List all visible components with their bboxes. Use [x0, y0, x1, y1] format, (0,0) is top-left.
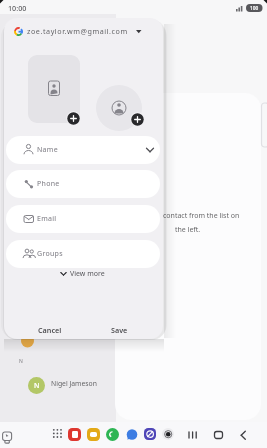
button[interactable]: [162, 428, 174, 440]
button[interactable]: [144, 428, 156, 440]
staticText: 10:00: [8, 3, 27, 13]
staticText: the left.: [175, 225, 201, 235]
staticText: N: [19, 358, 23, 365]
button[interactable]: View more: [60, 268, 105, 280]
staticText: Phone: [37, 179, 60, 189]
button[interactable]: [28, 55, 80, 123]
button[interactable]: [68, 428, 81, 441]
button[interactable]: [96, 85, 142, 131]
button[interactable]: Name: [6, 136, 160, 164]
staticText: Email: [37, 214, 57, 224]
button[interactable]: [186, 430, 200, 440]
button[interactable]: [52, 428, 63, 439]
staticText: Name: [37, 145, 58, 155]
staticText: Nigel Jameson: [51, 379, 97, 388]
button[interactable]: Phone: [6, 170, 160, 198]
button[interactable]: [2, 431, 13, 445]
button[interactable]: [126, 429, 138, 441]
button[interactable]: Email: [6, 205, 160, 233]
button[interactable]: [130, 112, 145, 127]
button[interactable]: [236, 429, 250, 441]
button[interactable]: zoe.taylor.wm@gmail.com: [14, 24, 150, 38]
button[interactable]: Cancel: [30, 322, 70, 338]
button[interactable]: [87, 428, 100, 441]
button[interactable]: [66, 111, 81, 126]
staticText: View more: [70, 269, 105, 279]
staticText: N: [34, 381, 40, 391]
staticText: 100: [250, 5, 259, 12]
staticText: Select a contact from the list on: [136, 211, 240, 221]
staticText: zoe.taylor.wm@gmail.com: [27, 26, 128, 36]
staticText: Cancel: [38, 325, 62, 335]
button[interactable]: [212, 430, 225, 440]
button[interactable]: N: [26, 373, 116, 394]
button[interactable]: Save: [101, 322, 137, 338]
button[interactable]: Groups: [6, 240, 160, 268]
button[interactable]: [106, 428, 119, 441]
staticText: Save: [111, 325, 128, 335]
staticText: Groups: [37, 249, 63, 259]
